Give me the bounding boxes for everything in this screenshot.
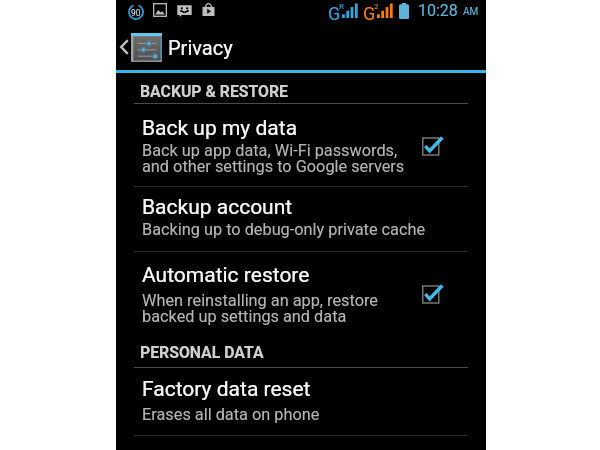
staticText: G — [328, 3, 341, 21]
staticText: PERSONAL DATA — [140, 343, 264, 362]
button[interactable]: Checkbox, checked — [422, 285, 450, 313]
staticText: Backup account — [142, 195, 293, 220]
staticText: Erases all data on phone — [142, 405, 320, 424]
staticText: 10:28 — [418, 1, 458, 20]
button[interactable]: Checkbox, checked — [422, 137, 450, 165]
staticText: AM — [463, 6, 479, 18]
staticText: G — [363, 3, 376, 21]
button[interactable]: Automatic restore — [116, 252, 486, 330]
staticText: Backing up to debug-only private cache — [142, 220, 426, 239]
staticText: Back up app data, Wi-Fi passwords, — [142, 141, 398, 160]
staticText: Automatic restore — [142, 263, 310, 288]
staticText: Privacy — [168, 36, 233, 59]
button[interactable]: Backup account — [116, 187, 486, 251]
staticText: BACKUP & RESTORE — [140, 82, 288, 101]
button[interactable]: Back up my data — [116, 104, 486, 186]
staticText: Factory data reset — [142, 377, 311, 402]
staticText: When reinstalling an app, restore — [142, 291, 379, 310]
button[interactable]: Factory data reset — [116, 368, 486, 435]
staticText: 90 — [131, 8, 141, 18]
button[interactable]: Up, Privacy — [116, 24, 486, 70]
staticText: Back up my data — [142, 116, 298, 141]
staticText: 2 — [374, 2, 379, 11]
staticText: and other settings to Google servers — [142, 157, 405, 176]
staticText: backed up settings and data — [142, 307, 347, 326]
staticText: R — [339, 2, 344, 11]
